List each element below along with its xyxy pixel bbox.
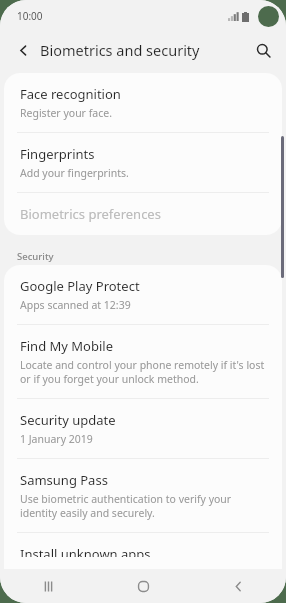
staticText: Locate and control your phone remotely i…	[20, 358, 268, 386]
staticText: 1 January 2019	[20, 432, 93, 446]
staticText: Find My Mobile	[20, 337, 114, 355]
button[interactable]: Fingerprints	[4, 133, 282, 192]
button[interactable]: Find My Mobile	[4, 325, 282, 398]
staticText: Samsung Pass	[20, 471, 108, 489]
staticText: Face recognition	[20, 85, 121, 103]
button[interactable]: Google Play Protect	[4, 265, 282, 324]
staticText: Biometrics and security	[40, 40, 200, 60]
button[interactable]: Search	[248, 35, 278, 65]
staticText: Fingerprints	[20, 145, 95, 163]
button[interactable]: Biometrics preferences	[4, 193, 282, 235]
button[interactable]: Install unknown apps	[4, 533, 282, 569]
button[interactable]: Recent apps	[0, 569, 96, 603]
button[interactable]: Back	[8, 35, 38, 65]
button[interactable]: Home	[96, 569, 191, 603]
staticText: Register your face.	[20, 106, 112, 120]
button[interactable]: Back	[191, 569, 286, 603]
staticText: Add your fingerprints.	[20, 166, 129, 180]
staticText: Biometrics preferences	[20, 205, 161, 223]
staticText: Apps scanned at 12:39	[20, 298, 131, 312]
staticText: Install unknown apps	[20, 545, 151, 557]
staticText: Google Play Protect	[20, 277, 140, 295]
button[interactable]: Samsung Pass	[4, 459, 282, 532]
staticText: Security update	[20, 411, 116, 429]
staticText: 10:00	[17, 9, 43, 23]
button[interactable]: Security update	[4, 399, 282, 458]
button[interactable]: Face recognition	[4, 73, 282, 132]
staticText: Security	[17, 250, 54, 263]
staticText: Use biometric authentication to verify y…	[20, 492, 268, 520]
